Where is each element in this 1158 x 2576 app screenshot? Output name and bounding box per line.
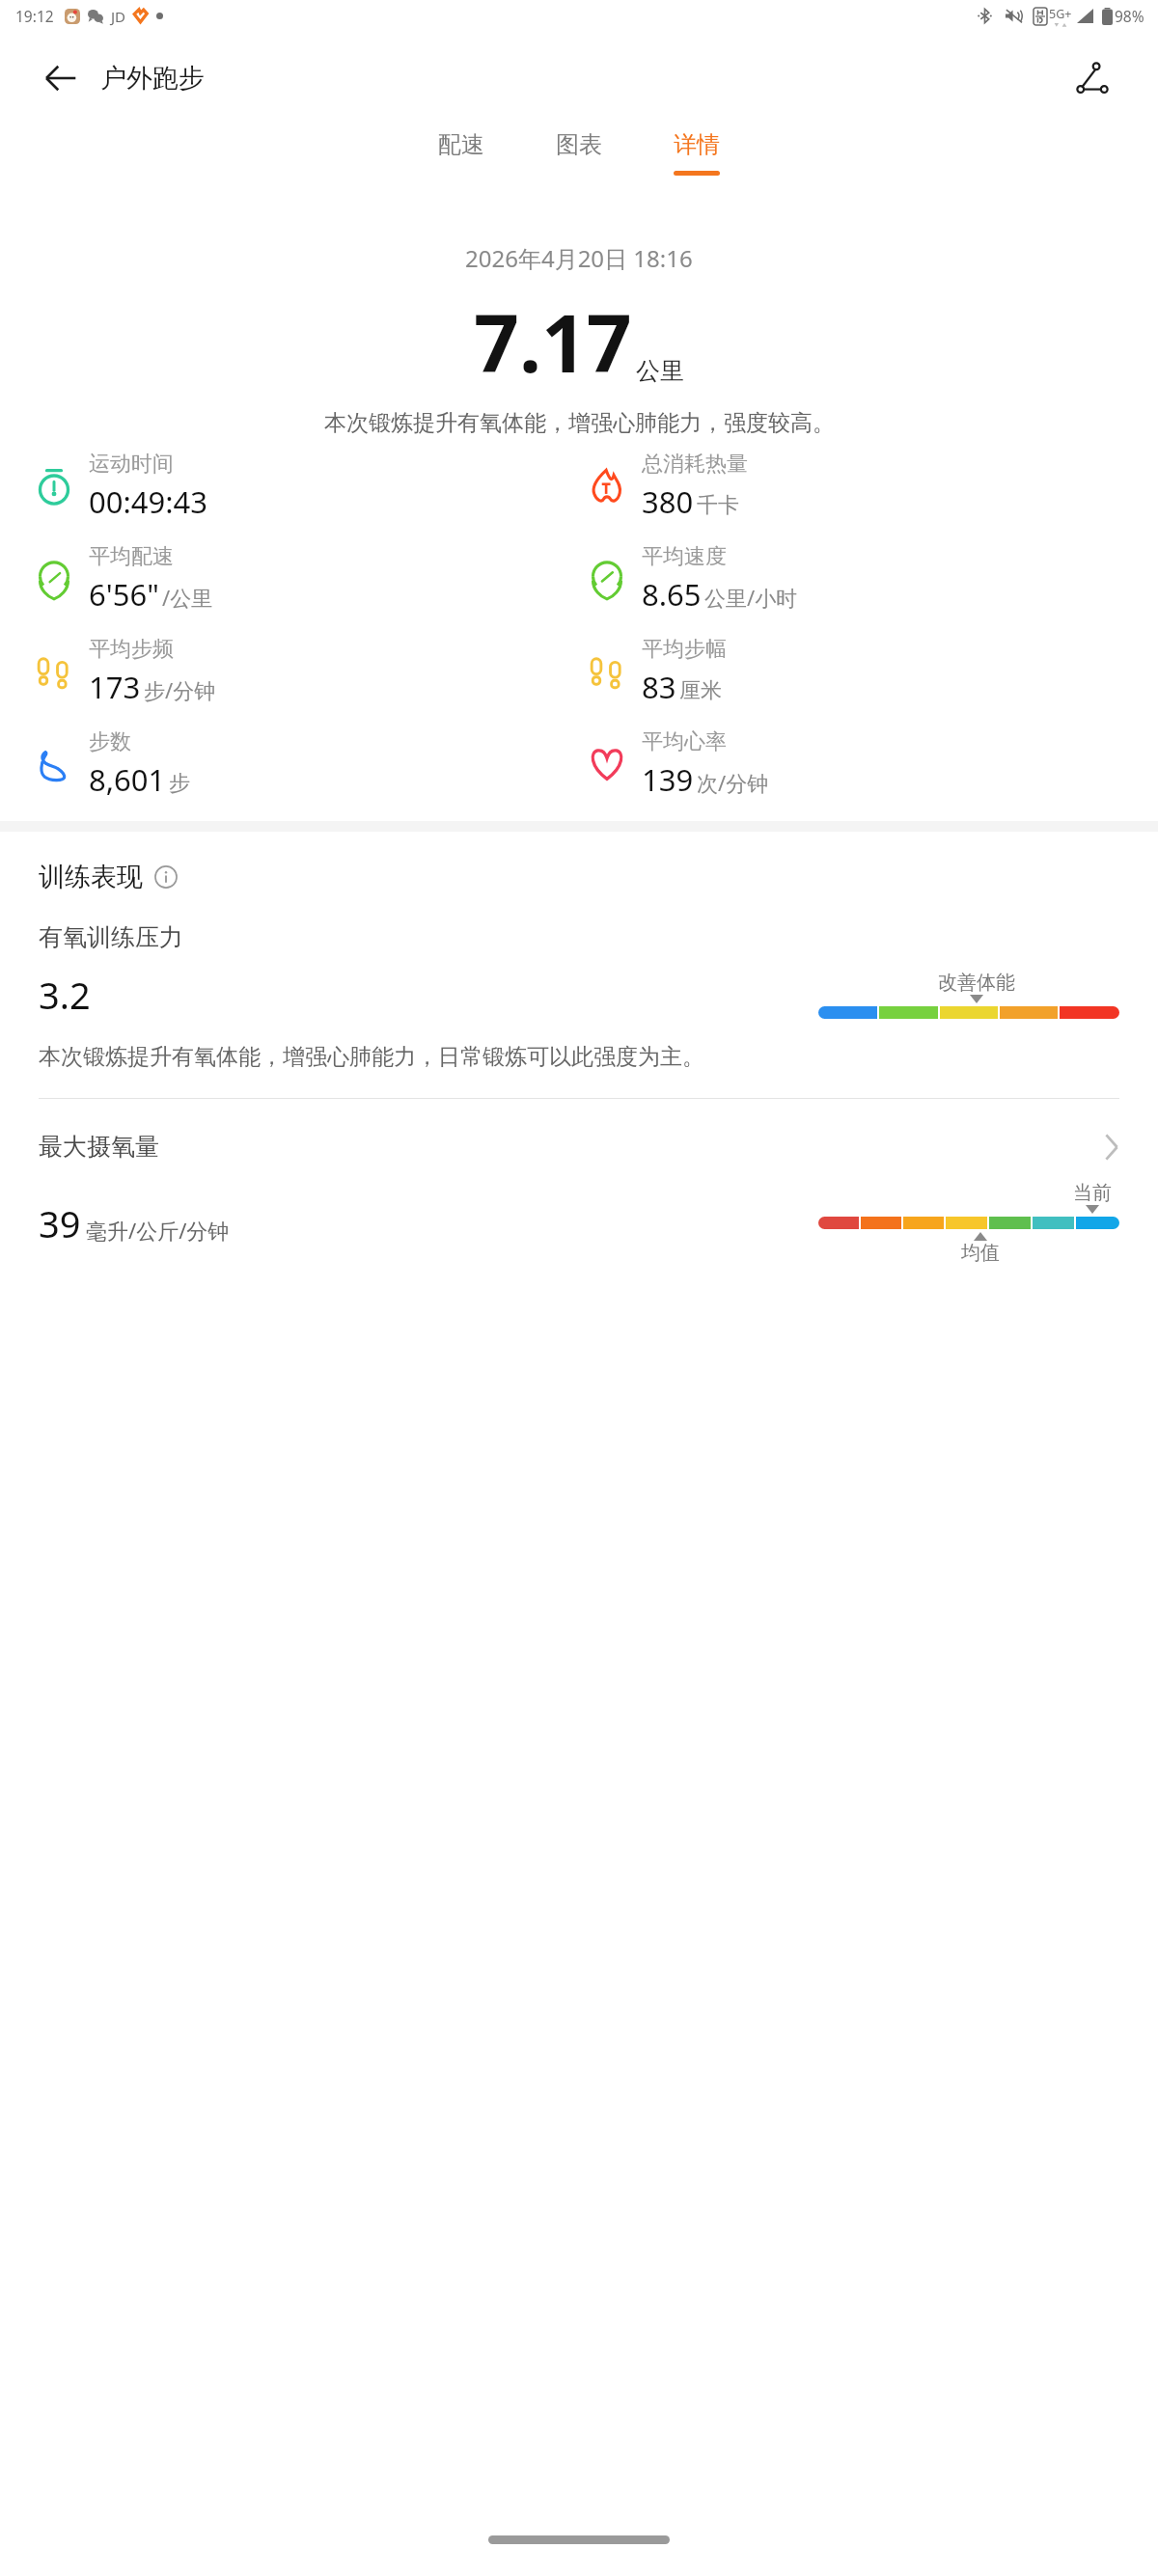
- button[interactable]: Duration: [33, 451, 586, 522]
- staticText: 公里: [636, 356, 684, 386]
- button[interactable]: Share: [1069, 55, 1116, 101]
- button[interactable]: 最大摄氧量: [39, 1132, 1119, 1162]
- staticText: 厘米: [679, 677, 722, 704]
- staticText: 平均配速: [89, 543, 174, 570]
- staticText: 总消耗热量: [642, 451, 748, 478]
- staticText: 最大摄氧量: [39, 1132, 159, 1162]
- staticText: 户外跑步: [100, 62, 205, 95]
- staticText: 98%: [1115, 6, 1144, 26]
- button[interactable]: Average speed: [586, 543, 1139, 615]
- staticText: 平均心率: [642, 728, 727, 755]
- staticText: JD: [111, 7, 126, 26]
- staticText: 千卡: [697, 492, 739, 519]
- button[interactable]: 图表: [542, 124, 616, 177]
- button[interactable]: Steps: [33, 728, 586, 800]
- staticText: 图表: [556, 130, 602, 159]
- staticText: 有氧训练压力: [39, 922, 183, 952]
- staticText: 公里/小时: [704, 583, 798, 612]
- button[interactable]: 配速: [425, 124, 498, 177]
- staticText: 6'56": [89, 574, 159, 615]
- staticText: 平均步幅: [642, 636, 727, 663]
- staticText: 配速: [438, 130, 484, 159]
- staticText: 2026年4月20日 18:16: [465, 242, 693, 274]
- button[interactable]: Heart rate: [586, 728, 1139, 800]
- staticText: 173: [89, 667, 141, 707]
- staticText: 本次锻炼提升有氧体能，增强心肺能力，强度较高。: [324, 409, 835, 437]
- staticText: 3.2: [39, 970, 91, 1020]
- staticText: 平均速度: [642, 543, 727, 570]
- button[interactable]: Stride: [586, 636, 1139, 707]
- staticText: 改善体能: [938, 971, 1015, 995]
- staticText: 步数: [89, 728, 131, 755]
- staticText: 步/分钟: [144, 675, 216, 704]
- staticText: 39: [39, 1198, 81, 1248]
- staticText: 8.65: [642, 574, 702, 615]
- staticText: 详情: [674, 130, 720, 159]
- button[interactable]: 训练表现: [39, 861, 178, 893]
- staticText: 毫升/公斤/分钟: [86, 1216, 230, 1245]
- staticText: 83: [642, 667, 676, 707]
- staticText: 次/分钟: [697, 768, 769, 797]
- staticText: 139: [642, 759, 694, 800]
- staticText: 当前: [1073, 1181, 1112, 1205]
- staticText: 步: [169, 770, 190, 797]
- button[interactable]: Cadence: [33, 636, 586, 707]
- staticText: 平均步频: [89, 636, 174, 663]
- staticText: 8,601: [89, 759, 166, 800]
- staticText: 7.17: [474, 288, 632, 396]
- button[interactable]: Back: [39, 56, 83, 100]
- staticText: 训练表现: [39, 861, 143, 893]
- staticText: 5G+: [1049, 6, 1072, 22]
- staticText: 本次锻炼提升有氧体能，增强心肺能力，日常锻炼可以此强度为主。: [39, 1043, 704, 1071]
- staticText: 00:49:43: [89, 481, 208, 522]
- button[interactable]: 详情: [660, 124, 733, 181]
- staticText: /公里: [162, 583, 213, 612]
- staticText: 运动时间: [89, 451, 174, 478]
- button[interactable]: Average pace: [33, 543, 586, 615]
- button[interactable]: Calories: [586, 451, 1139, 522]
- staticText: 均值: [961, 1241, 1000, 1265]
- staticText: 19:12: [15, 6, 54, 26]
- staticText: 380: [642, 481, 694, 522]
